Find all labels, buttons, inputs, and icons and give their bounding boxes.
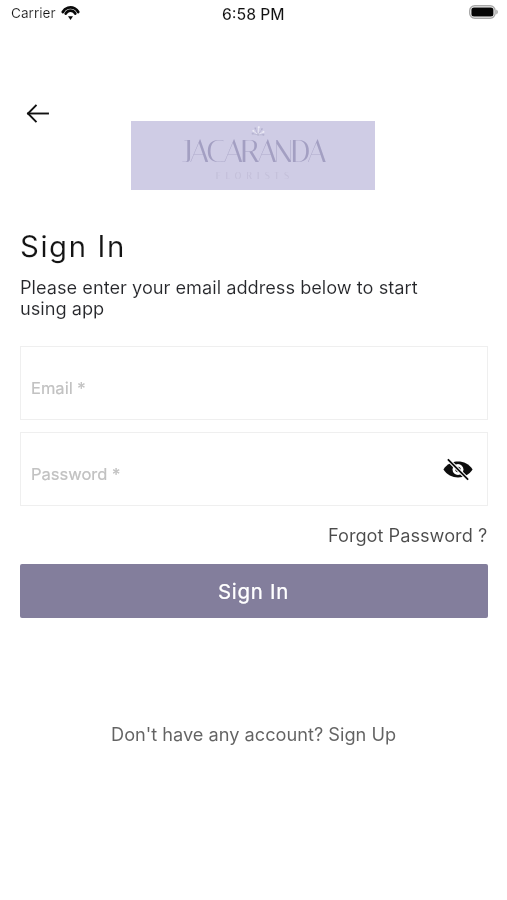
button[interactable]: Password * [20, 432, 488, 506]
button[interactable]: Don't have any account? Sign Up [111, 723, 397, 745]
button[interactable]: Forgot Password ? [328, 524, 488, 546]
staticText: Sign In [20, 229, 126, 264]
staticText: 6:58 PM [222, 5, 285, 24]
button[interactable]: Sign In [20, 564, 488, 618]
staticText: Don't have any account? Sign Up [111, 723, 397, 745]
button[interactable]: Show password [442, 453, 474, 485]
button[interactable]: Back [20, 96, 54, 130]
staticText: Email * [31, 378, 86, 398]
staticText: Password * [31, 464, 121, 484]
button[interactable]: Email * [20, 346, 488, 420]
button[interactable]: Jacaranda Florists logo [131, 121, 375, 190]
staticText: Forgot Password ? [328, 524, 488, 546]
staticText: Carrier [11, 5, 56, 21]
staticText: Sign In [218, 579, 290, 604]
staticText: JACARANDA [183, 133, 325, 170]
staticText: Please enter your email address below to… [20, 276, 420, 320]
